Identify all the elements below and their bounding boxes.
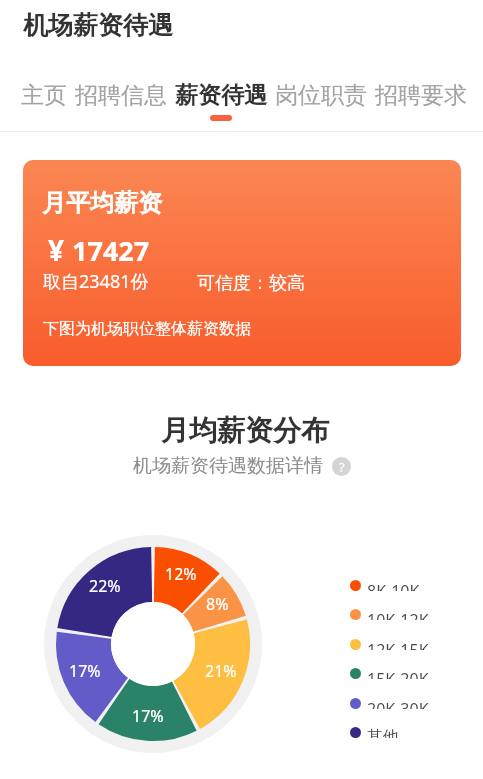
button[interactable]: 岗位职责 [271,81,371,115]
button[interactable]: 月平均薪资 [23,160,461,366]
staticText: 20K-30K [367,698,429,709]
button[interactable]: 其他 [350,727,399,738]
staticText: 岗位职责 [275,81,367,110]
button[interactable]: 8K-10K [350,580,420,591]
staticText: 机场薪资待遇数据详情 [133,454,323,478]
staticText: 月平均薪资 [42,188,162,218]
button[interactable]: 招聘要求 [371,81,471,115]
staticText: 8K-10K [367,580,420,591]
staticText: 月均薪资分布 [161,413,329,448]
button[interactable]: 薪资待遇 [171,81,271,121]
staticText: ¥ [48,231,65,269]
staticText: 薪资待遇 [175,81,267,110]
staticText: 17% [132,705,164,727]
button[interactable]: 主页 [17,81,71,115]
button[interactable]: 15K-20K [350,668,429,679]
staticText: 招聘信息 [75,81,167,110]
staticText: 15K-20K [367,668,429,679]
button[interactable]: 10K-12K [350,609,429,620]
staticText: ? [339,458,345,476]
staticText: 取自23481份 [43,269,149,294]
staticText: 招聘要求 [375,81,467,110]
staticText: 21% [205,660,237,682]
staticText: 其他 [367,727,399,738]
staticText: 17% [69,660,101,682]
button[interactable]: 12K-15K [350,639,429,650]
staticText: 12% [165,563,197,585]
staticText: 10K-12K [367,609,429,620]
staticText: 主页 [21,81,67,110]
button[interactable]: 招聘信息 [71,81,171,115]
staticText: 机场薪资待遇 [23,10,173,41]
button[interactable]: Help [332,457,351,476]
staticText: 12K-15K [367,639,429,650]
staticText: 下图为机场职位整体薪资数据 [43,319,251,339]
staticText: 8% [206,593,229,615]
staticText: 17427 [72,232,150,269]
staticText: 22% [89,575,121,597]
staticText: 可信度：较高 [197,272,305,295]
button[interactable]: 20K-30K [350,698,429,709]
